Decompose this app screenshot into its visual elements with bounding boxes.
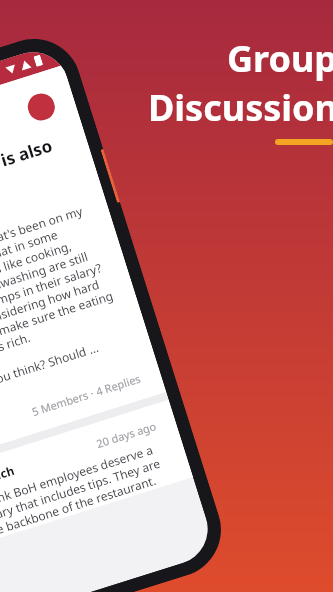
other: Signal	[19, 59, 31, 71]
staticText: I think BoH employees deserve a salary t…	[0, 438, 174, 542]
staticText: a-welch	[0, 462, 17, 491]
staticText: There is a topic that's been on my mind.…	[0, 201, 131, 404]
staticText: Discussion	[148, 83, 333, 132]
staticText: 20 days ago	[94, 418, 158, 451]
staticText: Group	[227, 34, 333, 83]
other: Wifi	[5, 63, 17, 75]
staticText: Compensation is also	[0, 134, 55, 210]
button[interactable]: Group avatar	[24, 90, 58, 124]
staticText: 5 Members · 4 Replies	[30, 370, 143, 419]
